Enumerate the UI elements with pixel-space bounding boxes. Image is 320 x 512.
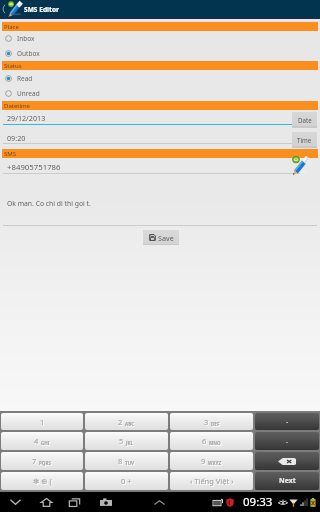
- staticText: -: [286, 417, 289, 427]
- button[interactable]: -: [255, 413, 319, 430]
- other: Backspace: [278, 458, 296, 465]
- button[interactable]: Next: [255, 472, 319, 490]
- staticText: DEF: [211, 421, 220, 427]
- staticText: SMS: [4, 150, 17, 158]
- button[interactable]: 9: [170, 452, 253, 470]
- button[interactable]: .: [255, 432, 319, 450]
- button[interactable]: 7: [1, 452, 83, 470]
- staticText: Read: [17, 74, 33, 83]
- staticText: ABC: [125, 421, 135, 427]
- staticText: DEF: [212, 422, 221, 428]
- button[interactable]: Home: [36, 492, 56, 512]
- staticText: 8: [119, 457, 124, 467]
- button[interactable]: Navigate up: [0, 0, 6, 18]
- staticText: GHI: [41, 440, 50, 446]
- staticText: SMS Editor: [24, 5, 59, 14]
- button[interactable]: Screenshot: [96, 492, 116, 512]
- staticText: 1: [40, 417, 45, 427]
- button[interactable]: ✻ ⊕ (: [1, 472, 83, 490]
- staticText: ‹ Tiếng Việt ›: [191, 477, 235, 487]
- button[interactable]: Date: [292, 112, 317, 128]
- staticText: 6: [202, 436, 207, 446]
- button[interactable]: ‹ Tiếng Việt ›: [170, 472, 253, 490]
- staticText: Unread: [17, 89, 40, 98]
- button[interactable]: Backspace: [255, 452, 319, 470]
- staticText: Ok man. Co chi di thi goi t.: [7, 199, 91, 208]
- button[interactable]: 0 +: [85, 472, 168, 490]
- staticText: Time: [297, 136, 312, 144]
- staticText: +84905751786: [7, 162, 61, 173]
- staticText: MNO: [209, 440, 221, 446]
- staticText: 5: [120, 437, 125, 447]
- staticText: JKL: [126, 440, 134, 446]
- staticText: Datetime: [4, 102, 31, 110]
- staticText: 4: [34, 436, 39, 446]
- staticText: Date: [298, 116, 312, 124]
- button[interactable]: 1: [1, 413, 83, 430]
- staticText: 4: [35, 437, 40, 447]
- staticText: 2: [119, 418, 124, 428]
- staticText: ABC: [126, 422, 136, 428]
- button[interactable]: 4: [1, 432, 83, 450]
- button[interactable]: Recent apps: [64, 492, 84, 512]
- staticText: Save: [158, 233, 174, 243]
- staticText: TUV: [125, 460, 135, 466]
- staticText: 3: [205, 418, 210, 428]
- staticText: 3: [204, 417, 209, 427]
- button[interactable]: 6: [170, 432, 253, 450]
- staticText: Place: [4, 23, 19, 31]
- button[interactable]: 8: [85, 452, 168, 470]
- staticText: WXYZ: [208, 460, 222, 466]
- staticText: 1: [41, 418, 46, 428]
- staticText: JKL: [127, 441, 135, 447]
- button[interactable]: 2: [85, 413, 168, 430]
- button[interactable]: Outbox: [0, 46, 320, 61]
- staticText: Status: [4, 62, 22, 70]
- staticText: 7: [32, 456, 37, 466]
- staticText: 09:20: [7, 133, 26, 143]
- staticText: 2: [118, 417, 123, 427]
- staticText: 0 +: [122, 477, 133, 487]
- staticText: MNO: [210, 441, 222, 447]
- staticText: Outbox: [17, 49, 40, 58]
- staticText: 0 +: [121, 476, 132, 486]
- staticText: TUV: [126, 461, 136, 467]
- button[interactable]: Save: [143, 230, 179, 245]
- staticText: .: [286, 436, 288, 446]
- button[interactable]: Read: [0, 71, 320, 86]
- staticText: 8: [118, 456, 123, 466]
- button[interactable]: Expand status bar: [149, 492, 169, 512]
- button[interactable]: Inbox: [0, 31, 320, 46]
- staticText: GHI: [42, 441, 51, 447]
- staticText: ✻ ⊕ (: [33, 476, 52, 486]
- button[interactable]: 3: [170, 413, 253, 430]
- staticText: WXYZ: [209, 461, 223, 467]
- staticText: PQRS: [40, 461, 53, 467]
- staticText: Next: [279, 476, 296, 486]
- staticText: PQRS: [39, 460, 52, 466]
- staticText: 9: [201, 456, 206, 466]
- staticText: Inbox: [17, 34, 35, 43]
- staticText: 6: [203, 437, 208, 447]
- staticText: ✻ ⊕ (: [34, 477, 53, 487]
- button[interactable]: 5: [85, 432, 168, 450]
- button[interactable]: Time: [292, 132, 317, 148]
- staticText: 29/12/2013: [7, 113, 46, 123]
- staticText: 9: [202, 457, 207, 467]
- staticText: ‹ Tiếng Việt ›: [190, 476, 234, 486]
- button[interactable]: Hide keyboard: [5, 492, 25, 512]
- staticText: 7: [33, 457, 38, 467]
- button[interactable]: Unread: [0, 86, 320, 101]
- staticText: 5: [119, 436, 124, 446]
- staticText: 09:33: [243, 494, 273, 510]
